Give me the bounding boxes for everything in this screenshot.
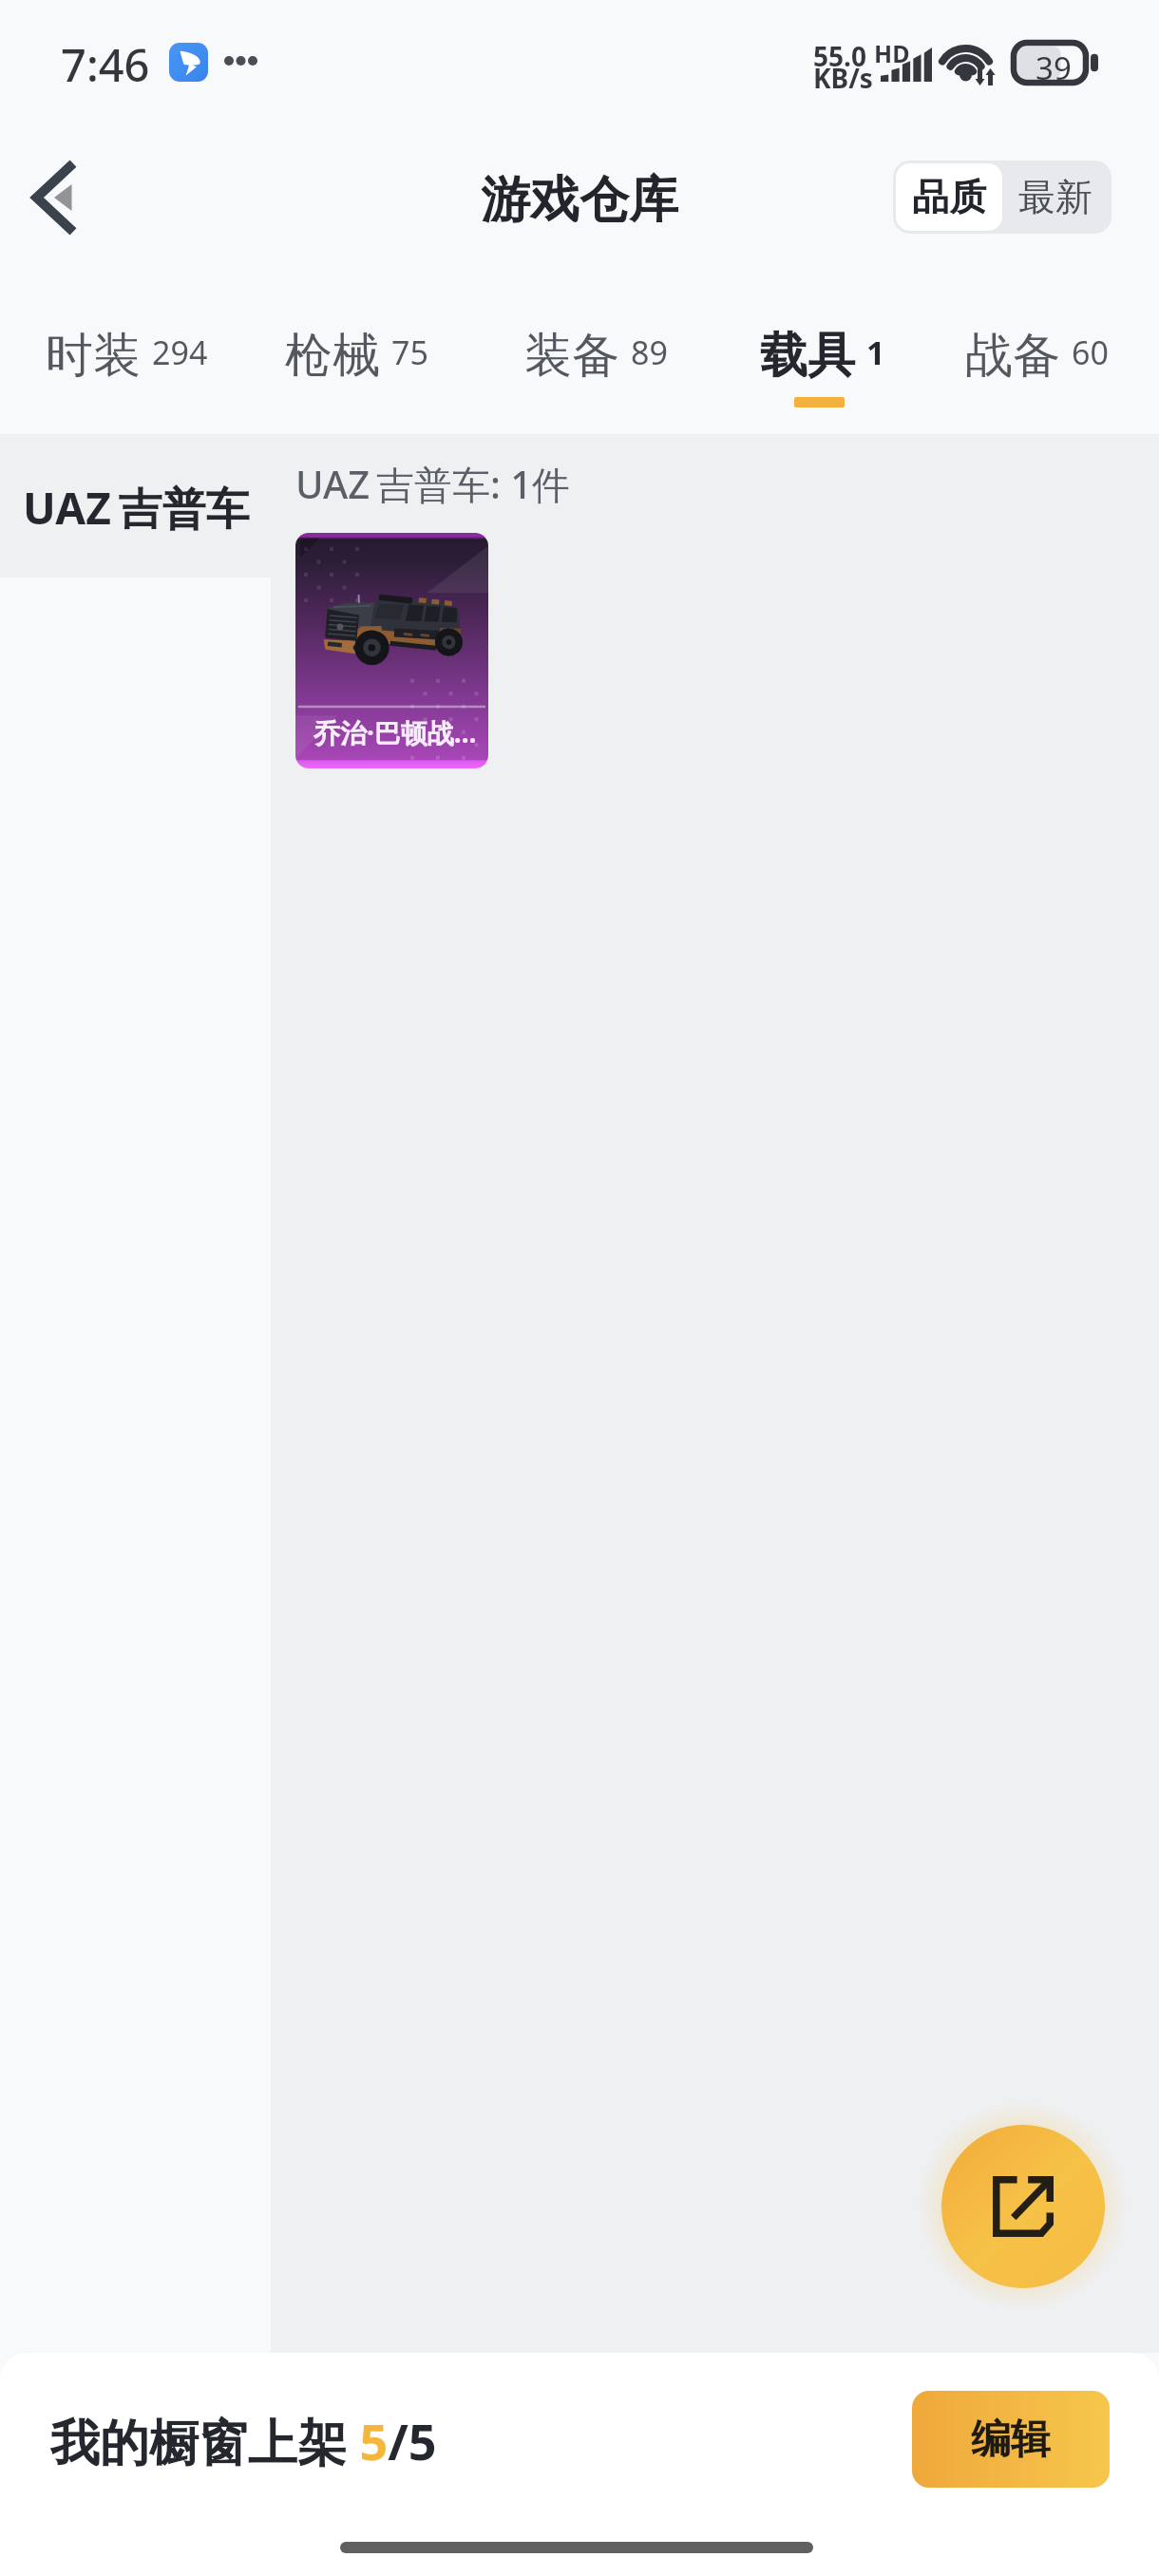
staticText: 75 <box>391 331 428 374</box>
staticText: 最新 <box>1018 174 1092 220</box>
staticText: 39 <box>1035 47 1072 89</box>
button[interactable]: 品质 <box>896 163 1002 231</box>
staticText: 1 <box>866 331 885 374</box>
button[interactable]: 枪械 <box>285 326 428 386</box>
staticText: 89 <box>631 331 668 374</box>
staticText: 时装 <box>46 326 141 386</box>
staticText: 55.0 <box>813 38 866 74</box>
button[interactable]: 载具 <box>760 326 885 386</box>
staticText: 294 <box>152 331 208 374</box>
staticText: 乔治·巴顿战... <box>313 714 477 750</box>
button[interactable]: Back <box>0 142 112 254</box>
staticText: 品质 <box>912 174 986 220</box>
button[interactable]: 装备 <box>524 326 668 386</box>
staticText: 我的橱窗上架 5/5 <box>50 2407 437 2474</box>
staticText: 60 <box>1072 331 1109 374</box>
button[interactable]: Share to showcase <box>941 2125 1105 2288</box>
staticText: 7:46 <box>61 34 150 95</box>
staticText: HD <box>874 37 910 69</box>
staticText: 载具 <box>760 326 855 386</box>
staticText: 编辑 <box>971 2415 1051 2465</box>
staticText: 游戏仓库 <box>481 169 678 232</box>
staticText: UAZ 吉普车 <box>23 478 250 538</box>
button[interactable]: 乔治·巴顿战... <box>295 533 488 768</box>
staticText: UAZ 吉普车: 1件 <box>295 458 571 510</box>
button[interactable]: UAZ 吉普车 <box>0 434 271 578</box>
button[interactable]: 编辑 <box>912 2391 1110 2488</box>
button[interactable]: 战备 <box>965 326 1109 386</box>
staticText: 战备 <box>965 326 1060 386</box>
staticText: 装备 <box>524 326 619 386</box>
button[interactable]: 时装 <box>46 326 208 386</box>
button[interactable]: 最新 <box>1002 163 1109 231</box>
staticText: KB/s <box>813 60 873 96</box>
staticText: 枪械 <box>285 326 380 386</box>
